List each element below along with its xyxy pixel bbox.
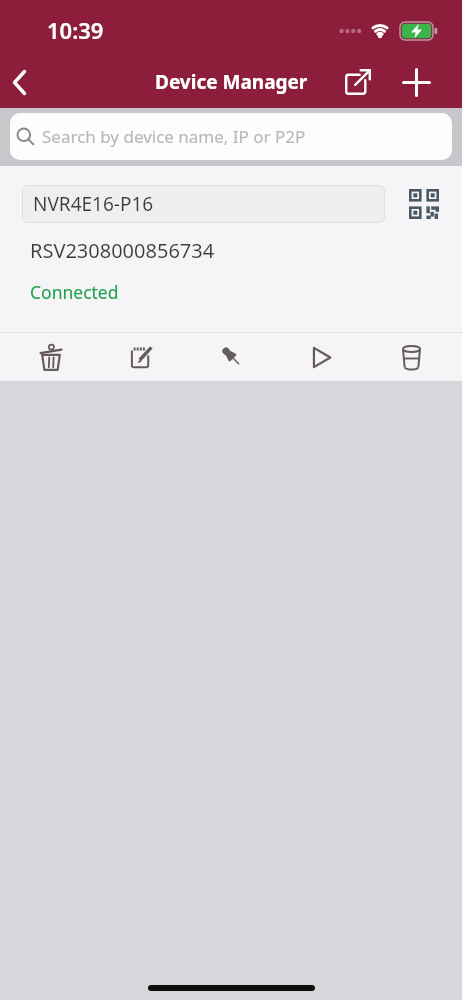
staticText: NVR4E16-P16 xyxy=(33,191,154,217)
staticText: 10:39 xyxy=(47,15,104,45)
button[interactable] xyxy=(276,333,366,381)
button[interactable]: NVR4E16-P16 xyxy=(22,185,385,223)
button[interactable] xyxy=(1,64,37,100)
staticText: Search by device name, IP or P2P xyxy=(42,125,306,148)
staticText: RSV2308000856734 xyxy=(30,237,215,264)
button[interactable] xyxy=(186,333,276,381)
staticText: Connected xyxy=(30,280,119,304)
button[interactable] xyxy=(366,333,456,381)
button[interactable] xyxy=(406,184,442,224)
staticText: Device Manager xyxy=(155,69,308,95)
button[interactable] xyxy=(96,333,186,381)
button[interactable] xyxy=(398,64,434,100)
button[interactable] xyxy=(340,64,376,100)
button[interactable]: Search by device name, IP or P2P xyxy=(10,113,452,160)
button[interactable] xyxy=(6,333,96,381)
